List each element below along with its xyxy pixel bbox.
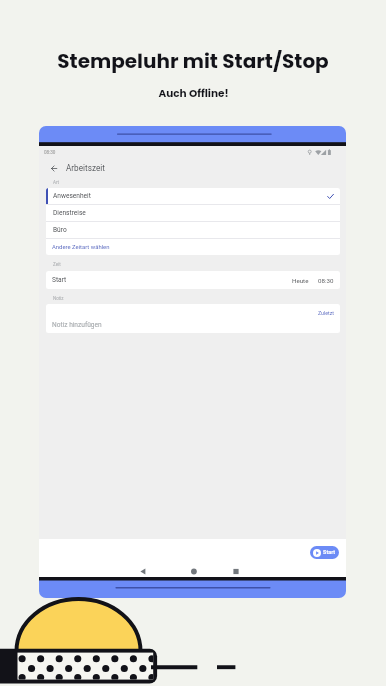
staticText: Anwesenheit — [53, 192, 91, 200]
staticText: Heute — [292, 277, 309, 284]
button[interactable]: Andere Zeitart wählen — [46, 239, 340, 255]
staticText: Auch Offline! — [158, 86, 229, 101]
button[interactable]: Start — [46, 271, 340, 289]
button[interactable]: Start — [310, 546, 339, 559]
button[interactable]: Büro — [46, 222, 340, 238]
staticText: Andere Zeitart wählen — [52, 244, 110, 251]
staticText: Art — [53, 180, 60, 185]
button[interactable]: Zuletzt — [312, 304, 340, 317]
staticText: 08:30 — [318, 277, 334, 284]
button[interactable]: Dienstreise — [46, 205, 340, 221]
staticText: Zeit — [53, 262, 61, 267]
staticText: Start — [323, 549, 336, 556]
staticText: 08:30 — [44, 150, 56, 155]
staticText: Büro — [53, 226, 67, 234]
staticText: Arbeitszeit — [66, 163, 105, 173]
staticText: Notiz — [53, 296, 64, 301]
button[interactable]: Anwesenheit — [46, 188, 340, 204]
button[interactable]: Back — [47, 162, 60, 175]
staticText: Zuletzt — [318, 310, 334, 316]
staticText: Notiz hinzufügen — [52, 321, 102, 329]
staticText: Dienstreise — [53, 209, 86, 217]
staticText: Stempeluhr mit Start/Stop — [57, 47, 329, 75]
staticText: Start — [52, 276, 67, 284]
